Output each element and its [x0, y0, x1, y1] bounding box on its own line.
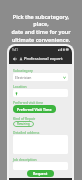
button[interactable]: Rewiring: [13, 121, 34, 127]
staticText: 9:41: [12, 48, 18, 52]
staticText: Preferred visit time: [13, 100, 44, 104]
staticText: Kind of Repair: [13, 116, 36, 120]
staticText: Job description: [13, 157, 37, 161]
button[interactable]: Preferred Visit Time: [13, 105, 56, 113]
button[interactable]: Electrician: [13, 73, 68, 81]
staticText: Preferred Visit Time: [17, 107, 52, 112]
button[interactable]: Back: [11, 55, 19, 63]
staticText: Rewiring: [17, 122, 30, 126]
button[interactable]: Request: [27, 170, 54, 177]
staticText: Request: [33, 171, 48, 176]
staticText: Professional expert: [24, 56, 63, 62]
staticText: Electrician: [15, 75, 32, 80]
staticText: Location: [13, 84, 27, 88]
staticText: Pick the subcategory, place, date and ti…: [5, 13, 77, 44]
staticText: Detailed address: [13, 130, 40, 134]
button[interactable]: [13, 89, 68, 97]
staticText: Subcategory: [13, 68, 33, 72]
